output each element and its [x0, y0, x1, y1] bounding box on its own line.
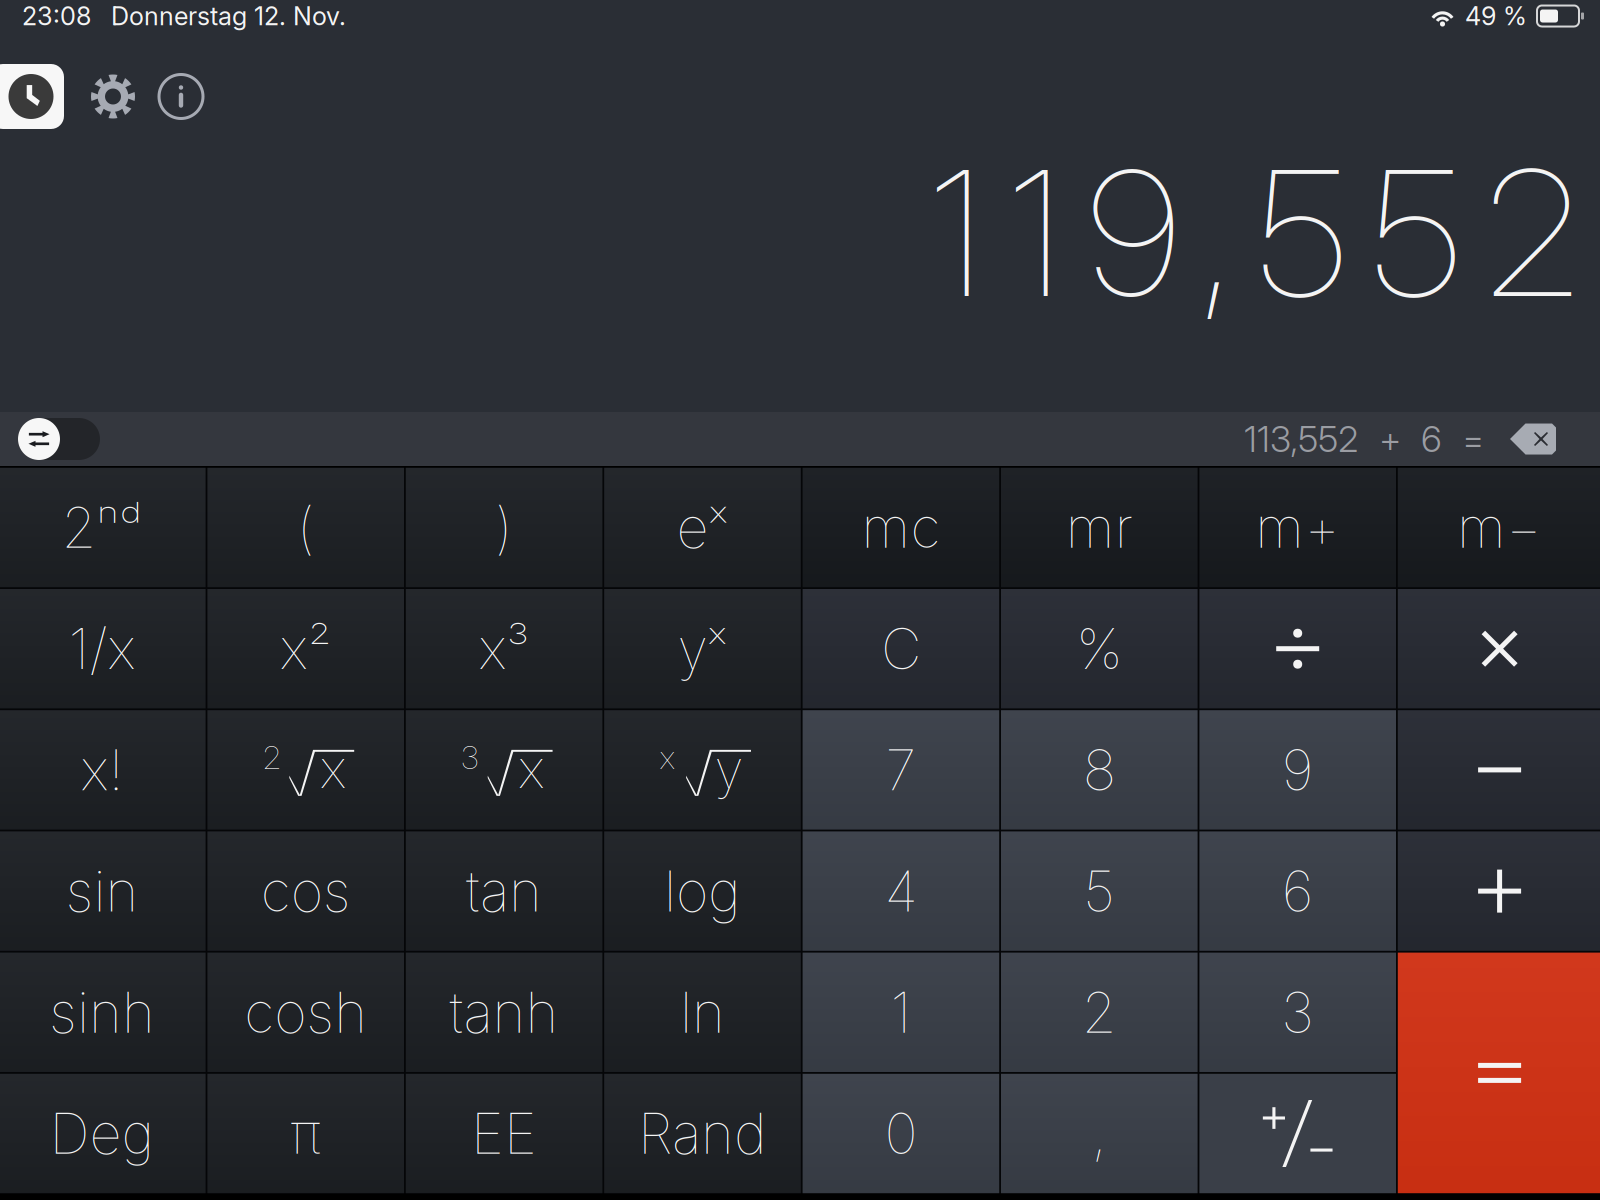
- button[interactable]: (: [207, 468, 404, 587]
- staticText: Donnerstag 12. Nov.: [111, 1, 346, 31]
- button[interactable]: Info: [154, 64, 208, 129]
- staticText: tanh: [450, 978, 559, 1046]
- button[interactable]: mc: [803, 468, 999, 587]
- button[interactable]: cosh: [207, 953, 404, 1072]
- staticText: 1/x: [69, 615, 136, 683]
- button[interactable]: 4: [803, 831, 999, 951]
- staticText: x²: [280, 615, 332, 683]
- button[interactable]: Deg: [0, 1074, 206, 1193]
- button[interactable]: Delete: [1510, 423, 1556, 454]
- button[interactable]: 2ⁿᵈ: [0, 468, 206, 587]
- button[interactable]: 0: [803, 1074, 999, 1193]
- staticText: 3: [461, 738, 479, 777]
- button[interactable]: EE: [406, 1074, 602, 1193]
- staticText: x!: [81, 736, 124, 804]
- staticText: 1: [890, 978, 911, 1046]
- button[interactable]: yˣ: [604, 589, 801, 708]
- staticText: x: [320, 736, 347, 801]
- button[interactable]: ): [406, 468, 602, 587]
- button[interactable]: x: [604, 710, 801, 830]
- staticText: ln: [680, 978, 725, 1046]
- staticText: 4: [884, 857, 917, 925]
- button[interactable]: 2: [207, 710, 404, 830]
- staticText: 2: [263, 738, 281, 777]
- staticText: m−: [1457, 494, 1542, 561]
- staticText: x: [659, 738, 675, 777]
- staticText: =: [1462, 417, 1484, 461]
- button[interactable]: C: [803, 589, 999, 708]
- staticText: 2: [1082, 978, 1117, 1046]
- staticText: 8: [1083, 736, 1116, 804]
- button[interactable]: log: [604, 831, 801, 951]
- button[interactable]: 2: [1001, 953, 1198, 1072]
- button[interactable]: 8: [1001, 710, 1198, 830]
- staticText: 7: [885, 736, 916, 804]
- button[interactable]: sin: [0, 831, 206, 951]
- button[interactable]: ln: [604, 953, 801, 1072]
- staticText: EE: [471, 1100, 537, 1167]
- button[interactable]: m+: [1199, 468, 1396, 587]
- button[interactable]: Plus minus: [1199, 1074, 1396, 1193]
- button[interactable]: x!: [0, 710, 206, 830]
- staticText: 6: [1421, 417, 1442, 461]
- staticText: x³: [479, 615, 530, 683]
- staticText: yˣ: [677, 615, 727, 683]
- staticText: tan: [466, 857, 542, 925]
- button[interactable]: 1: [803, 953, 999, 1072]
- button[interactable]: 9: [1199, 710, 1396, 830]
- staticText: sinh: [49, 978, 155, 1046]
- staticText: eˣ: [676, 494, 728, 561]
- button[interactable]: cos: [207, 831, 404, 951]
- staticText: C: [881, 615, 921, 683]
- staticText: mc: [861, 494, 940, 561]
- button[interactable]: Plus: [1398, 831, 1600, 951]
- button[interactable]: Rand: [604, 1074, 801, 1193]
- button[interactable]: %: [1001, 589, 1198, 708]
- button[interactable]: Multiply: [1398, 589, 1600, 708]
- button[interactable]: x²: [207, 589, 404, 708]
- staticText: m+: [1255, 494, 1340, 561]
- staticText: x: [518, 736, 545, 801]
- staticText: y: [714, 736, 743, 801]
- staticText: (: [297, 494, 315, 561]
- button[interactable]: Equals: [1398, 953, 1600, 1193]
- staticText: 5: [1083, 857, 1115, 925]
- staticText: 23:08: [22, 1, 91, 31]
- button[interactable]: ,: [1001, 1074, 1198, 1193]
- button[interactable]: mr: [1001, 468, 1198, 587]
- button[interactable]: x³: [406, 589, 602, 708]
- staticText: +: [1379, 417, 1401, 461]
- staticText: sin: [66, 857, 139, 925]
- button[interactable]: π: [207, 1074, 404, 1193]
- button[interactable]: History: [0, 64, 64, 129]
- button[interactable]: Swap: [18, 418, 100, 460]
- staticText: Rand: [638, 1100, 767, 1167]
- staticText: π: [290, 1100, 321, 1167]
- button[interactable]: 3: [406, 710, 602, 830]
- staticText: 119,552: [930, 128, 1579, 338]
- button[interactable]: eˣ: [604, 468, 801, 587]
- staticText: 2ⁿᵈ: [62, 494, 143, 561]
- staticText: ,: [1092, 1100, 1107, 1167]
- staticText: log: [664, 857, 741, 925]
- staticText: 9: [1282, 736, 1314, 804]
- staticText: ): [495, 494, 513, 561]
- button[interactable]: 1/x: [0, 589, 206, 708]
- button[interactable]: Divide: [1199, 589, 1396, 708]
- button[interactable]: tan: [406, 831, 602, 951]
- button[interactable]: Settings: [86, 64, 140, 129]
- button[interactable]: Minus: [1398, 710, 1600, 830]
- staticText: cosh: [244, 978, 367, 1046]
- button[interactable]: m−: [1398, 468, 1600, 587]
- staticText: cos: [261, 857, 351, 925]
- button[interactable]: 3: [1199, 953, 1396, 1072]
- staticText: 3: [1281, 978, 1314, 1046]
- button[interactable]: 5: [1001, 831, 1198, 951]
- button[interactable]: 6: [1199, 831, 1396, 951]
- button[interactable]: 7: [803, 710, 999, 830]
- staticText: %: [1076, 615, 1123, 683]
- button[interactable]: tanh: [406, 953, 602, 1072]
- staticText: 49 %: [1465, 1, 1527, 31]
- button[interactable]: sinh: [0, 953, 206, 1072]
- staticText: 0: [884, 1100, 917, 1167]
